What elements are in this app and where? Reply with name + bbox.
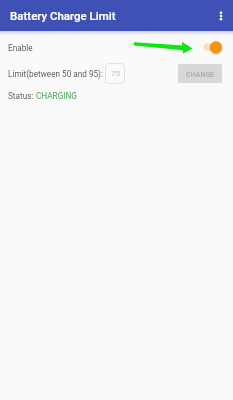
staticText: CHANGE <box>186 70 215 78</box>
staticText: Battery Charge Limit <box>10 9 116 22</box>
staticText: Status: <box>8 91 36 101</box>
button[interactable]: Enable charge limit <box>199 37 229 57</box>
staticText: CHARGING <box>36 91 77 101</box>
staticText: Enable <box>8 43 33 53</box>
staticText: 75 <box>111 69 120 78</box>
button[interactable]: CHANGE <box>178 64 222 83</box>
button[interactable]: More options <box>208 3 233 29</box>
button[interactable]: Limit value <box>105 63 125 84</box>
button[interactable]: Enable <box>0 39 233 57</box>
staticText: Limit(between 50 and 95): <box>8 69 103 79</box>
